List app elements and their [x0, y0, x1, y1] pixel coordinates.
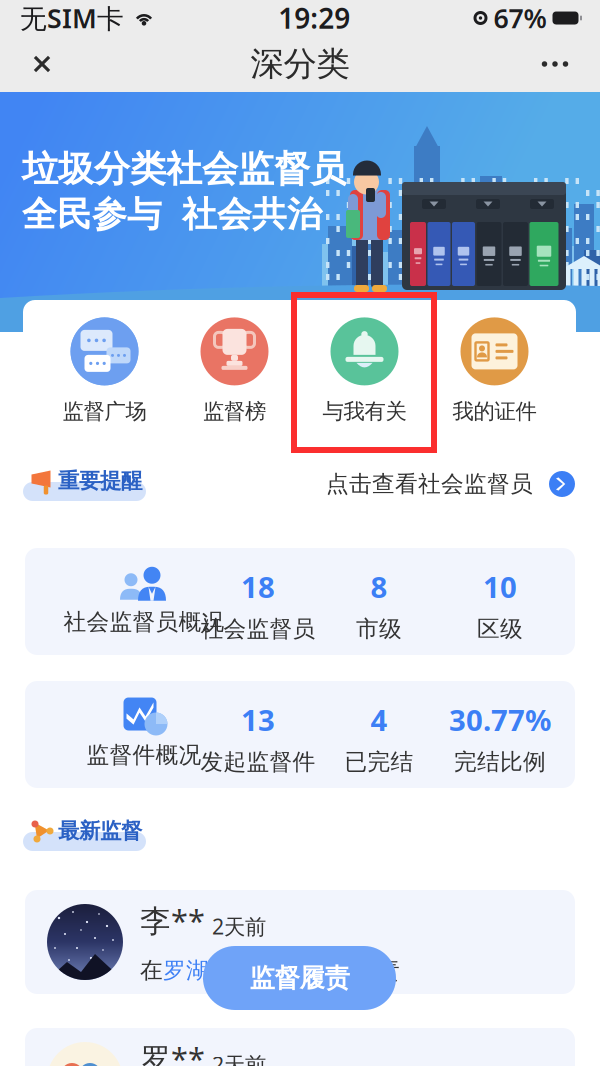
staticText: 垃圾分类社会监督员 [22, 147, 346, 191]
staticText: 2天前 [212, 1050, 266, 1066]
staticText: 市级 [356, 615, 402, 643]
staticText: 与我有关 [322, 398, 406, 425]
button[interactable]: 监督履责 [203, 946, 396, 1010]
staticText: 13 [241, 700, 275, 739]
staticText: 4 [370, 700, 387, 739]
button[interactable]: More options [524, 39, 586, 89]
staticText: 监督榜 [203, 398, 266, 425]
staticText: 社会监督员 [200, 615, 315, 643]
staticText: 监督件概况 [86, 741, 201, 769]
staticText: 最新监督 [58, 818, 142, 844]
staticText: 67% [493, 0, 546, 36]
button[interactable]: Close [14, 39, 70, 89]
button[interactable]: 罗** [25, 1028, 575, 1066]
button[interactable]: 与我有关 [299, 310, 429, 432]
staticText: 在 [140, 956, 163, 984]
staticText: 19:29 [278, 0, 350, 37]
staticText: 18 [241, 567, 275, 606]
button[interactable]: 李** [25, 890, 575, 994]
staticText: 李** [140, 900, 205, 940]
button[interactable]: 点击查看社会监督员 [326, 464, 574, 504]
button[interactable]: 社会监督员概况 [25, 548, 575, 655]
staticText: 我的证件 [452, 398, 536, 425]
button[interactable]: 监督件概况 [25, 681, 575, 788]
staticText: 罗湖区 [163, 956, 232, 984]
staticText: 重要提醒 [58, 468, 142, 494]
staticText: 罗** [140, 1038, 205, 1066]
staticText: 进行了 监督履责 [232, 956, 400, 984]
button[interactable]: 监督广场 [39, 310, 169, 432]
staticText: 2天前 [212, 912, 266, 940]
staticText: 已完结 [344, 748, 413, 776]
staticText: 监督广场 [62, 398, 146, 425]
staticText: 8 [370, 567, 387, 606]
staticText: 社会监督员概况 [63, 608, 224, 636]
staticText: 点击查看社会监督员 [326, 470, 533, 498]
staticText: 深分类 [250, 43, 349, 84]
staticText: 30.77% [449, 700, 551, 739]
staticText: 区级 [477, 615, 523, 643]
staticText: 监督履责 [249, 962, 349, 993]
staticText: 10 [483, 567, 517, 606]
staticText: 无SIM卡 [20, 0, 124, 36]
staticText: 发起监督件 [200, 748, 315, 776]
staticText: 完结比例 [454, 748, 546, 776]
button[interactable]: 我的证件 [429, 310, 559, 432]
staticText: 全民参与 社会共治 [22, 193, 322, 236]
button[interactable]: 监督榜 [169, 310, 299, 432]
